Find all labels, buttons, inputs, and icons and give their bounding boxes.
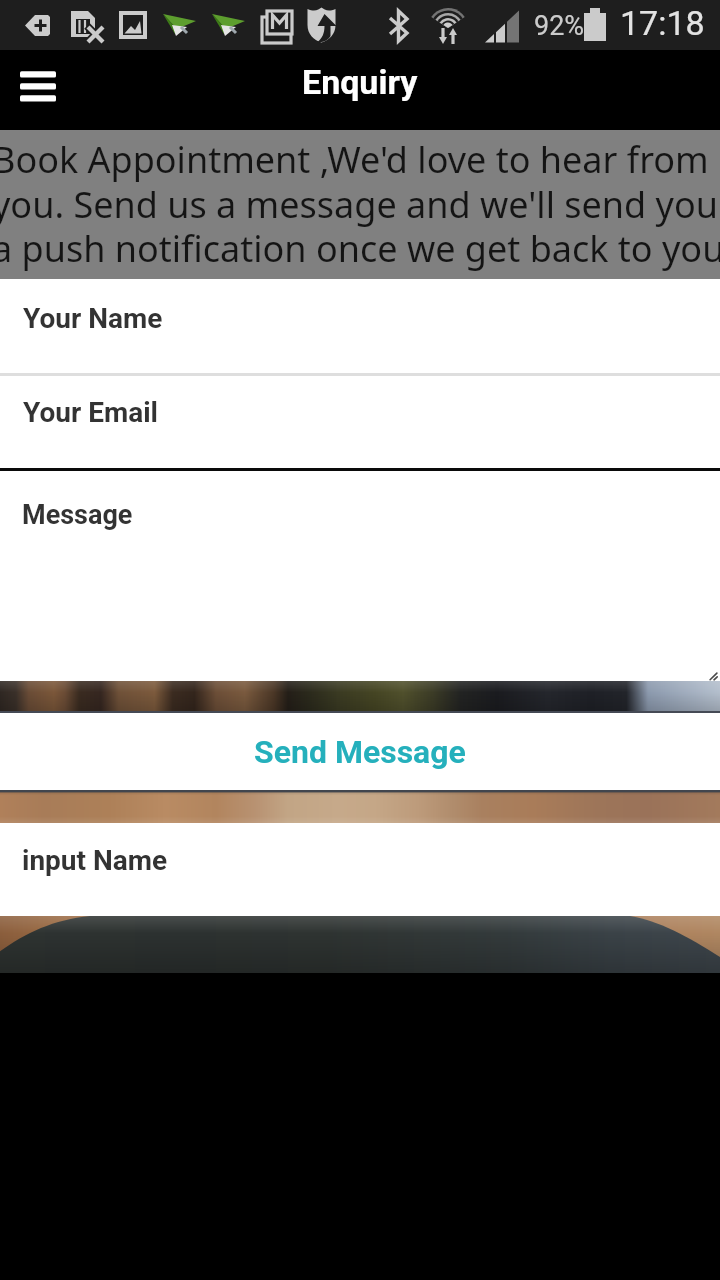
staticText: 17:18 xyxy=(620,3,705,43)
staticText: Your Email xyxy=(23,396,158,429)
staticText: 92% xyxy=(534,10,585,42)
staticText: Send Message xyxy=(254,733,466,771)
button[interactable]: Send Message xyxy=(0,713,720,790)
button[interactable]: Message xyxy=(0,471,720,681)
button[interactable]: Open navigation menu xyxy=(0,52,76,128)
staticText: Message xyxy=(22,499,133,531)
staticText: Enquiry xyxy=(302,62,418,102)
button[interactable]: Your Email xyxy=(0,376,720,468)
staticText: Your Name xyxy=(23,302,163,335)
staticText: input Name xyxy=(22,844,168,877)
button[interactable]: Your Name xyxy=(0,279,720,373)
button[interactable]: input Name xyxy=(0,823,720,916)
staticText: Book Appointment ,We'd love to hear from… xyxy=(0,135,720,272)
